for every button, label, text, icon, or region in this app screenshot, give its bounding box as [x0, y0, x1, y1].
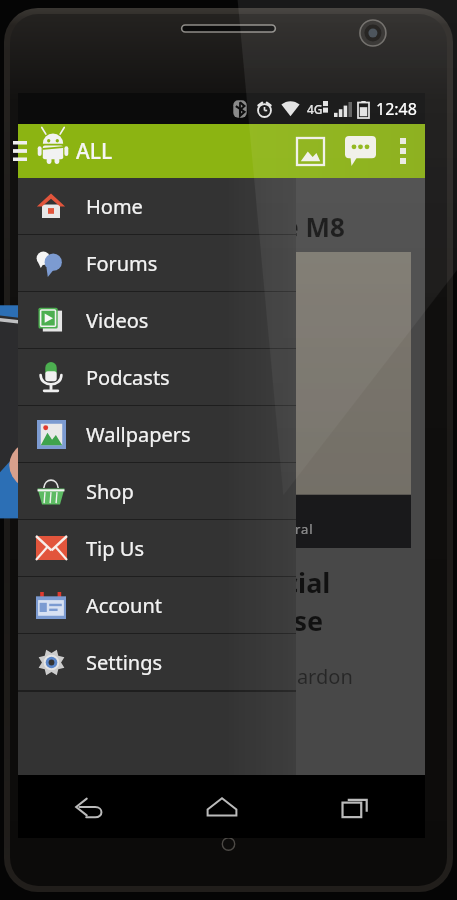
staticText: by Richard Jardon [188, 663, 353, 690]
staticText: Account [86, 592, 163, 619]
staticText: Settings [86, 649, 163, 676]
staticText: HTC One M8 [188, 209, 345, 244]
button[interactable]: Home [189, 775, 255, 838]
button[interactable]: Account [18, 577, 296, 633]
button[interactable]: Wallpapers [18, 406, 296, 462]
button[interactable]: Home [18, 178, 296, 234]
button[interactable]: More options [385, 124, 421, 178]
button[interactable]: Recent apps [322, 775, 388, 838]
staticText: Superficial otherwise [188, 564, 331, 639]
staticText: Wallpapers [86, 421, 191, 448]
button[interactable]: Back [56, 775, 122, 838]
staticText: Videos [86, 307, 149, 334]
button[interactable]: Comments [335, 124, 385, 178]
staticText: Forums [86, 250, 158, 277]
staticText: ALL [76, 137, 113, 166]
staticText: Shop [86, 478, 134, 505]
staticText: androidcentral [210, 520, 314, 538]
button[interactable]: Tip Us [18, 520, 296, 576]
button[interactable]: ALL [38, 124, 113, 178]
button[interactable]: Videos [18, 292, 296, 348]
button[interactable]: Podcasts [18, 349, 296, 405]
button[interactable]: Photos [285, 124, 335, 178]
staticText: Podcasts [86, 364, 170, 391]
button[interactable]: Forums [18, 235, 296, 291]
staticText: 12:48 [376, 98, 417, 120]
button[interactable]: Open navigation drawer [18, 124, 34, 178]
staticText: Tip Us [86, 535, 144, 562]
button[interactable]: Settings [18, 634, 296, 690]
button[interactable]: Shop [18, 463, 296, 519]
staticText: 4G [307, 101, 323, 117]
staticText: Home [86, 193, 143, 220]
